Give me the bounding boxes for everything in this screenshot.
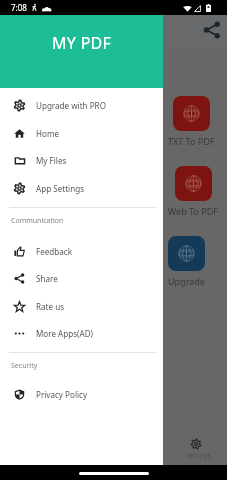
staticText: Share <box>36 273 58 284</box>
staticText: MY PDF <box>52 32 112 54</box>
button[interactable]: Rate us <box>0 293 163 319</box>
staticText: Settings <box>186 451 211 460</box>
staticText: More Apps(AD) <box>36 328 94 339</box>
button[interactable]: Feedback <box>0 238 163 264</box>
button[interactable]: Privacy Policy <box>0 381 163 407</box>
button[interactable]: Home <box>0 120 163 146</box>
button[interactable]: Share <box>0 265 163 291</box>
staticText: Web To PDF <box>168 205 218 217</box>
button[interactable]: Upgrade with PRO <box>0 92 163 118</box>
button[interactable] <box>173 96 210 131</box>
staticText: Upgrade <box>168 275 205 287</box>
button[interactable] <box>168 236 205 271</box>
button[interactable]: App Settings <box>0 175 163 201</box>
staticText: Home <box>36 128 60 139</box>
staticText: 7:08 <box>11 2 27 13</box>
staticText: Security <box>11 361 38 371</box>
staticText: App Settings <box>36 183 85 194</box>
staticText: Rate us <box>36 301 65 312</box>
staticText: TXT To PDF <box>168 135 215 147</box>
button[interactable] <box>175 166 212 201</box>
staticText: Privacy Policy <box>36 389 88 400</box>
staticText: My Files <box>36 155 67 166</box>
button[interactable]: Share <box>200 18 224 42</box>
staticText: Upgrade with PRO <box>36 100 106 111</box>
staticText: Communication <box>11 216 64 226</box>
button[interactable]: Settings <box>170 432 227 465</box>
button[interactable]: More Apps(AD) <box>0 320 163 346</box>
staticText: Feedback <box>36 246 73 257</box>
button[interactable]: My Files <box>0 147 163 173</box>
